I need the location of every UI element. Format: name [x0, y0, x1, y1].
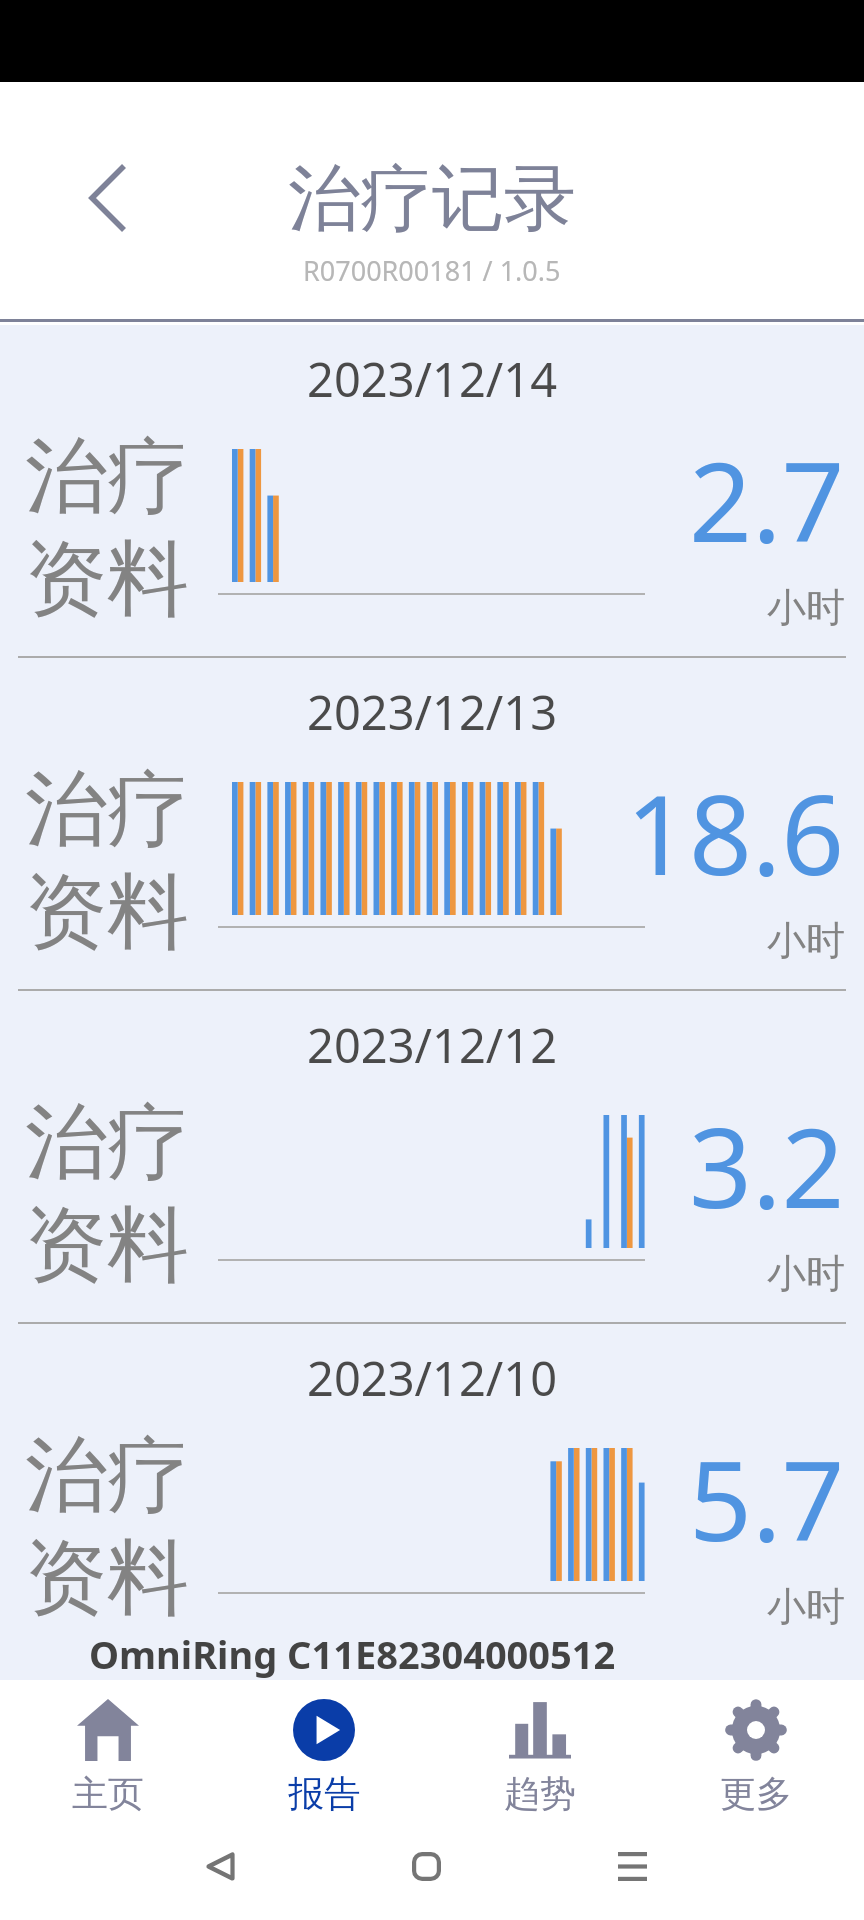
staticText: 资料 [25, 861, 189, 964]
staticText: 治疗 [25, 758, 189, 861]
staticText: 小时 [767, 916, 845, 965]
button[interactable]: 2023/12/14 [0, 325, 864, 656]
button[interactable]: 更多 [648, 1680, 864, 1820]
button[interactable]: Recents [564, 1832, 700, 1900]
staticText: 小时 [767, 583, 845, 632]
other: Recents [618, 1852, 647, 1881]
staticText: 3.2 [689, 1090, 845, 1240]
staticText: 资料 [25, 528, 189, 631]
button[interactable]: 2023/12/13 [0, 658, 864, 989]
button[interactable]: Back [152, 1832, 288, 1900]
staticText: R0700R00181 / 1.0.5 [303, 252, 561, 289]
staticText: 治疗记录 [288, 154, 576, 245]
staticText: 小时 [767, 1249, 845, 1298]
button[interactable]: 趋势 [432, 1680, 648, 1820]
staticText: 18.6 [626, 757, 845, 907]
button[interactable]: Back [72, 150, 144, 246]
staticText: 治疗 [25, 1091, 189, 1194]
button[interactable]: 主页 [0, 1680, 216, 1820]
other: Home [412, 1852, 441, 1881]
staticText: 资料 [25, 1194, 189, 1297]
staticText: 2023/12/12 [307, 1013, 558, 1077]
staticText: 2023/12/14 [307, 347, 558, 411]
staticText: 更多 [720, 1771, 792, 1816]
button[interactable]: 2023/12/10 [0, 1324, 864, 1655]
staticText: 5.7 [689, 1423, 845, 1573]
button[interactable]: Home [358, 1832, 494, 1900]
staticText: 趋势 [504, 1771, 576, 1816]
staticText: 小时 [767, 1582, 845, 1631]
staticText: 2.7 [689, 424, 845, 574]
staticText: 治疗 [25, 425, 189, 528]
staticText: 2023/12/10 [307, 1346, 558, 1410]
staticText: 治疗 [25, 1424, 189, 1527]
button[interactable]: 报告 [216, 1680, 432, 1820]
staticText: 报告 [288, 1771, 360, 1816]
other: Back [206, 1852, 235, 1881]
staticText: OmniRing C11E82304000512 [89, 1628, 616, 1680]
staticText: 2023/12/13 [307, 680, 558, 744]
button[interactable]: 2023/12/12 [0, 991, 864, 1322]
staticText: 资料 [25, 1527, 189, 1630]
staticText: 主页 [72, 1771, 144, 1816]
